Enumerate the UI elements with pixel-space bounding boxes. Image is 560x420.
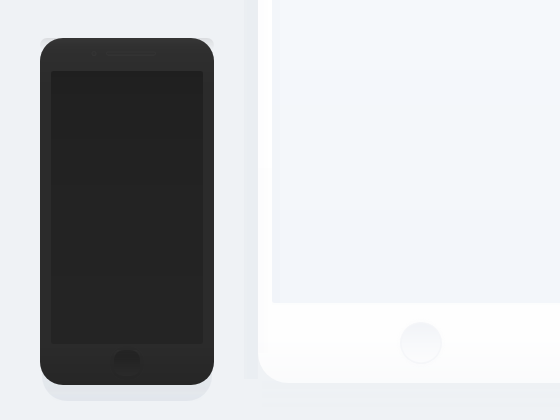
button[interactable]: Black phone device	[0, 0, 560, 420]
button[interactable]: White tablet device	[0, 0, 560, 420]
